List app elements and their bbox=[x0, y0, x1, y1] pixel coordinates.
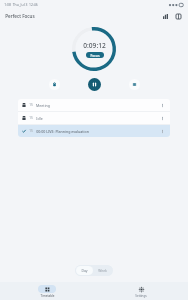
button[interactable]: Pause bbox=[88, 78, 101, 91]
button[interactable]: 15 bbox=[18, 125, 170, 137]
staticText: Week bbox=[98, 268, 107, 273]
staticText: Day bbox=[81, 268, 88, 273]
button[interactable]: Row options bbox=[158, 127, 166, 135]
button[interactable]: Row options bbox=[158, 101, 166, 109]
staticText: 00:00 LIVE: Planning evaluation bbox=[36, 129, 89, 134]
button[interactable]: 15 bbox=[18, 112, 170, 124]
staticText: 15 bbox=[29, 116, 33, 120]
staticText: Perfect Focus bbox=[5, 13, 35, 19]
button[interactable]: Reset bbox=[49, 79, 60, 90]
button[interactable]: 15 bbox=[18, 99, 170, 111]
staticText: 1:08 Thu, Jul 3 12:46 bbox=[4, 2, 38, 7]
button[interactable]: Day bbox=[76, 266, 93, 275]
button[interactable]: Settings bbox=[94, 284, 188, 299]
button[interactable]: Statistics bbox=[160, 11, 170, 21]
staticText: Focus bbox=[90, 53, 100, 57]
staticText: Timetable bbox=[40, 294, 55, 298]
button[interactable]: Timetable bbox=[0, 284, 94, 299]
staticText: Meeting bbox=[36, 103, 50, 108]
staticText: Settings bbox=[135, 294, 147, 298]
staticText: 15 bbox=[29, 129, 33, 133]
staticText: 15 bbox=[29, 103, 33, 107]
staticText: Idle bbox=[36, 116, 43, 121]
button[interactable]: More options bbox=[173, 11, 183, 21]
button[interactable]: Row options bbox=[158, 114, 166, 122]
button[interactable]: Focus bbox=[86, 52, 104, 58]
button[interactable]: Skip bbox=[129, 79, 140, 90]
staticText: 0:09:12 bbox=[83, 41, 106, 50]
button[interactable]: Week bbox=[93, 266, 112, 275]
